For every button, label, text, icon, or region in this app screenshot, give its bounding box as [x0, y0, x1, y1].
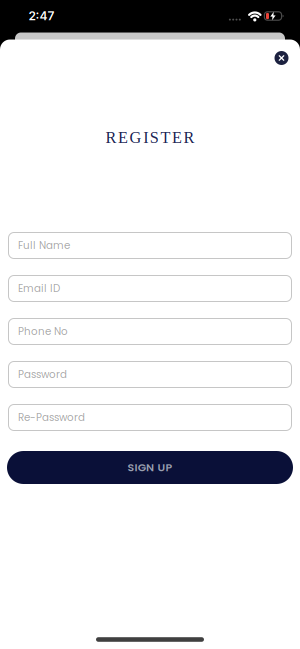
staticText: R [184, 128, 195, 146]
button[interactable]: Full Name [8, 232, 292, 259]
staticText: SIGN UP [127, 460, 173, 475]
button[interactable]: SIGN UP [7, 451, 293, 484]
button[interactable]: Re-Password [8, 404, 292, 431]
staticText: R [105, 128, 116, 146]
button[interactable]: Close [274, 51, 288, 65]
staticText: T [160, 128, 170, 146]
button[interactable]: Phone No [8, 318, 292, 345]
staticText: Password [18, 367, 67, 382]
staticText: Full Name [18, 238, 70, 253]
staticText: I [143, 128, 148, 146]
staticText: S [150, 128, 159, 146]
staticText: Re-Password [18, 410, 85, 425]
staticText: G [130, 128, 142, 146]
staticText: E [172, 128, 182, 146]
button[interactable]: Password [8, 361, 292, 388]
staticText: Phone No [18, 324, 68, 339]
staticText: Email ID [18, 281, 60, 296]
staticText: 2:47 [28, 9, 54, 23]
staticText: E [118, 128, 128, 146]
button[interactable]: Email ID [8, 275, 292, 302]
